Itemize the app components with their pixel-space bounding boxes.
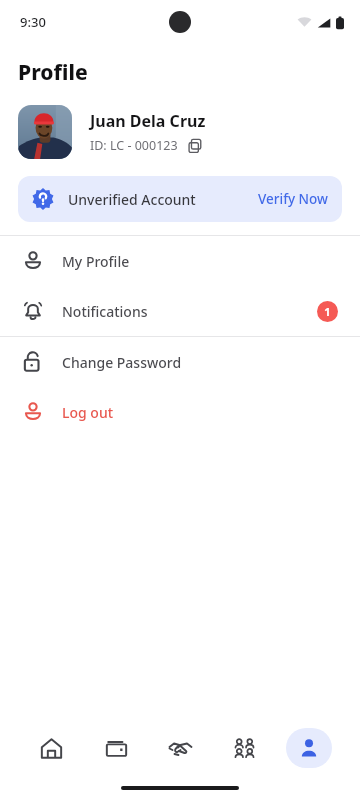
button[interactable]: Log out (0, 387, 360, 437)
button[interactable]: Profile (286, 728, 332, 768)
button[interactable]: Juan Dela Cruz (0, 105, 360, 159)
staticText: 1 (324, 304, 331, 319)
staticText: Unverified Account (68, 190, 196, 209)
button[interactable]: Copy ID (187, 138, 203, 154)
button[interactable]: Unverified Account (18, 176, 342, 222)
staticText: ID: LC - 000123 (90, 137, 178, 154)
button[interactable]: Wallet (93, 728, 139, 768)
staticText: Juan Dela Cruz (90, 110, 206, 132)
staticText: My Profile (62, 252, 130, 271)
button[interactable]: Groups (221, 728, 267, 768)
button[interactable]: Notifications (0, 286, 360, 336)
staticText: Log out (62, 403, 114, 422)
staticText: Notifications (62, 302, 148, 321)
button[interactable]: Deals (157, 728, 203, 768)
button[interactable]: My Profile (0, 236, 360, 286)
button[interactable]: Change Password (0, 337, 360, 387)
staticText: Profile (18, 58, 88, 87)
staticText: Change Password (62, 353, 182, 372)
button[interactable]: Home (28, 728, 74, 768)
button[interactable]: Verify Now (258, 190, 328, 208)
staticText: 9:30 (20, 13, 46, 31)
